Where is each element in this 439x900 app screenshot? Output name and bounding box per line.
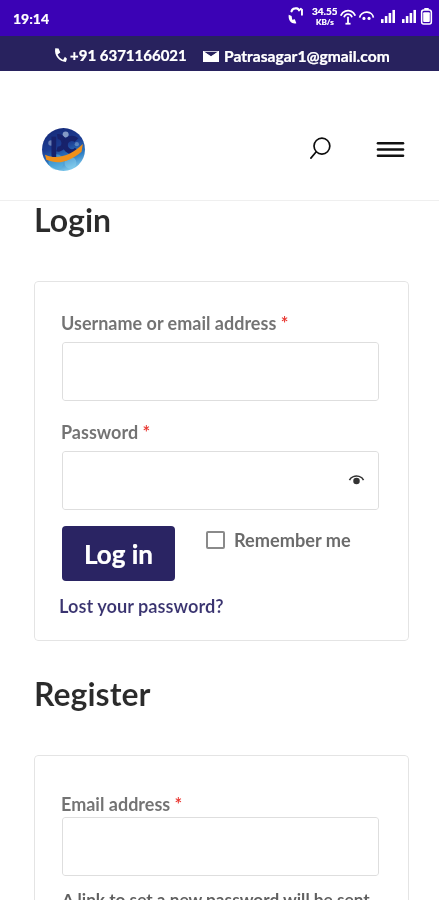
button[interactable]: Remember me [206,529,351,551]
staticText: Password * [61,421,151,443]
staticText: KB/s [316,17,334,27]
staticText: Email address * [61,793,183,815]
button[interactable]: Patrasagar1@gmail.com [203,47,390,66]
button[interactable]: Register [34,674,151,712]
button[interactable]: Login [34,200,112,238]
staticText: A link to set a new password will be sen… [62,889,382,900]
staticText: 34.55 [312,5,338,17]
button[interactable]: Log in [62,526,175,581]
staticText: Remember me [234,529,351,551]
button[interactable]: Lost your password? [59,595,224,617]
staticText: Log in [84,538,153,569]
button[interactable] [62,342,379,401]
staticText: Username or email address * [61,312,289,334]
button[interactable] [62,817,379,876]
staticText: +91 6371166021 [70,46,187,64]
button[interactable]: +91 6371166021 [53,46,187,64]
staticText: Patrasagar1@gmail.com [224,47,390,66]
button[interactable]: Home [42,128,85,171]
button[interactable]: Menu [372,131,408,167]
button[interactable] [62,451,379,510]
button[interactable]: Search [302,131,338,167]
staticText: 19:14 [13,10,50,27]
